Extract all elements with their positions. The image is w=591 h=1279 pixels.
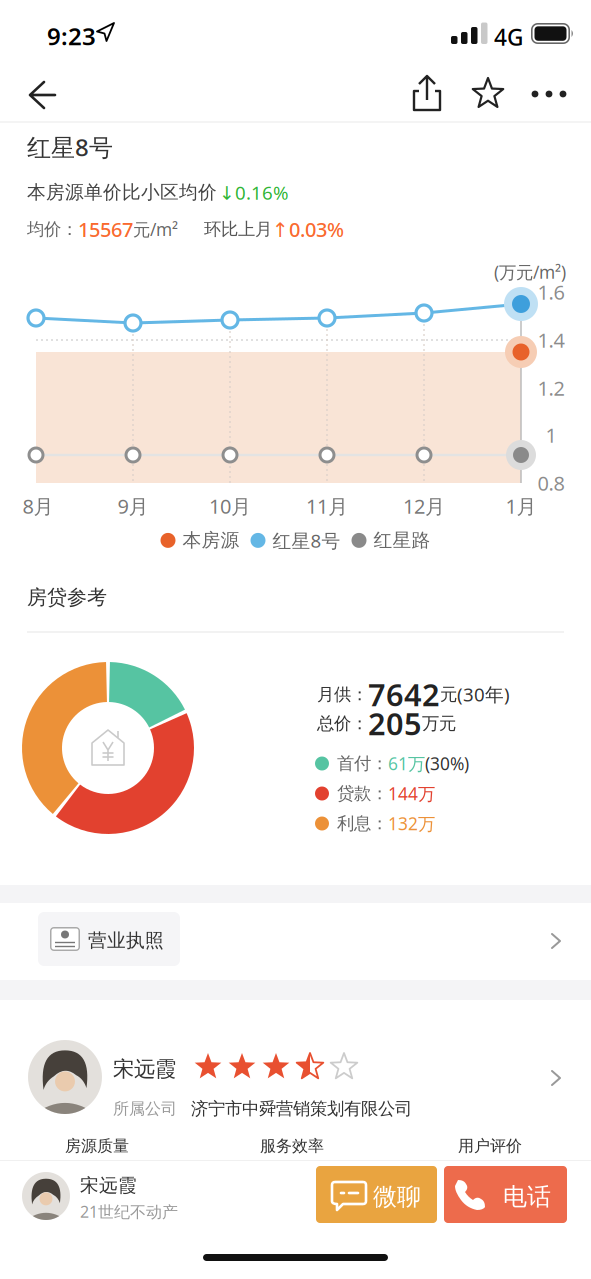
staticText: 元/m²: [133, 218, 178, 241]
staticText: ↓0.16%: [219, 180, 289, 205]
staticText: 132万: [388, 812, 435, 835]
staticText: 本房源: [182, 529, 239, 552]
staticText: 元: [440, 684, 457, 705]
button[interactable]: 微聊: [316, 1166, 437, 1223]
button[interactable]: [400, 72, 452, 122]
button[interactable]: 宋远霞: [0, 1000, 591, 1128]
staticText: 贷款：: [337, 783, 388, 804]
staticText: 月供：: [317, 684, 368, 705]
staticText: ↑0.03%: [272, 216, 344, 243]
staticText: 9:23: [47, 20, 96, 52]
button[interactable]: [523, 69, 575, 119]
staticText: 红星8号: [272, 528, 340, 553]
staticText: 144万: [388, 782, 435, 805]
staticText: 用户评价: [458, 1136, 522, 1156]
staticText: 本房源单价比小区均价: [27, 181, 217, 204]
staticText: 均价：: [27, 219, 78, 240]
staticText: 服务效率: [260, 1136, 324, 1156]
staticText: 205: [368, 703, 422, 744]
staticText: 1: [545, 422, 556, 448]
button[interactable]: 电话: [444, 1166, 567, 1223]
staticText: 12月: [403, 493, 445, 519]
staticText: 4G: [494, 22, 523, 52]
staticText: 1.4: [537, 327, 564, 353]
staticText: 8月: [22, 493, 53, 519]
staticText: 21世纪不动产: [80, 1201, 178, 1222]
staticText: 所属公司: [113, 1099, 177, 1118]
staticText: 10月: [209, 493, 251, 519]
staticText: 1.2: [537, 375, 564, 401]
staticText: 红星路: [373, 529, 430, 552]
staticText: 电话: [503, 1182, 551, 1211]
staticText: 7642: [368, 674, 440, 715]
staticText: 总价：: [317, 713, 368, 734]
staticText: 济宁市中舜营销策划有限公司: [191, 1098, 412, 1119]
staticText: 11月: [306, 493, 348, 519]
staticText: (30年): [457, 682, 510, 707]
staticText: 红星8号: [27, 131, 113, 163]
staticText: 宋远霞: [113, 1056, 176, 1082]
staticText: 房贷参考: [27, 585, 107, 610]
staticText: 环比上月: [204, 219, 272, 240]
staticText: 9月: [117, 493, 148, 519]
button[interactable]: [18, 70, 68, 120]
staticText: (万元/m²): [494, 260, 566, 283]
staticText: 首付：: [337, 753, 388, 774]
staticText: 1月: [505, 493, 536, 519]
button[interactable]: 宋远霞: [0, 1160, 300, 1232]
staticText: 宋远霞: [80, 1174, 137, 1197]
staticText: 1.6: [537, 279, 564, 305]
button[interactable]: [462, 70, 514, 120]
staticText: 营业执照: [88, 929, 164, 952]
button[interactable]: 营业执照: [0, 903, 591, 980]
staticText: 微聊: [373, 1182, 421, 1211]
staticText: 房源质量: [65, 1136, 129, 1156]
staticText: 利息：: [337, 813, 388, 834]
staticText: (30%): [425, 752, 469, 775]
staticText: 61万: [388, 752, 425, 775]
staticText: 0.8: [537, 470, 564, 496]
staticText: 万元: [422, 713, 456, 734]
staticText: 15567: [78, 216, 133, 243]
